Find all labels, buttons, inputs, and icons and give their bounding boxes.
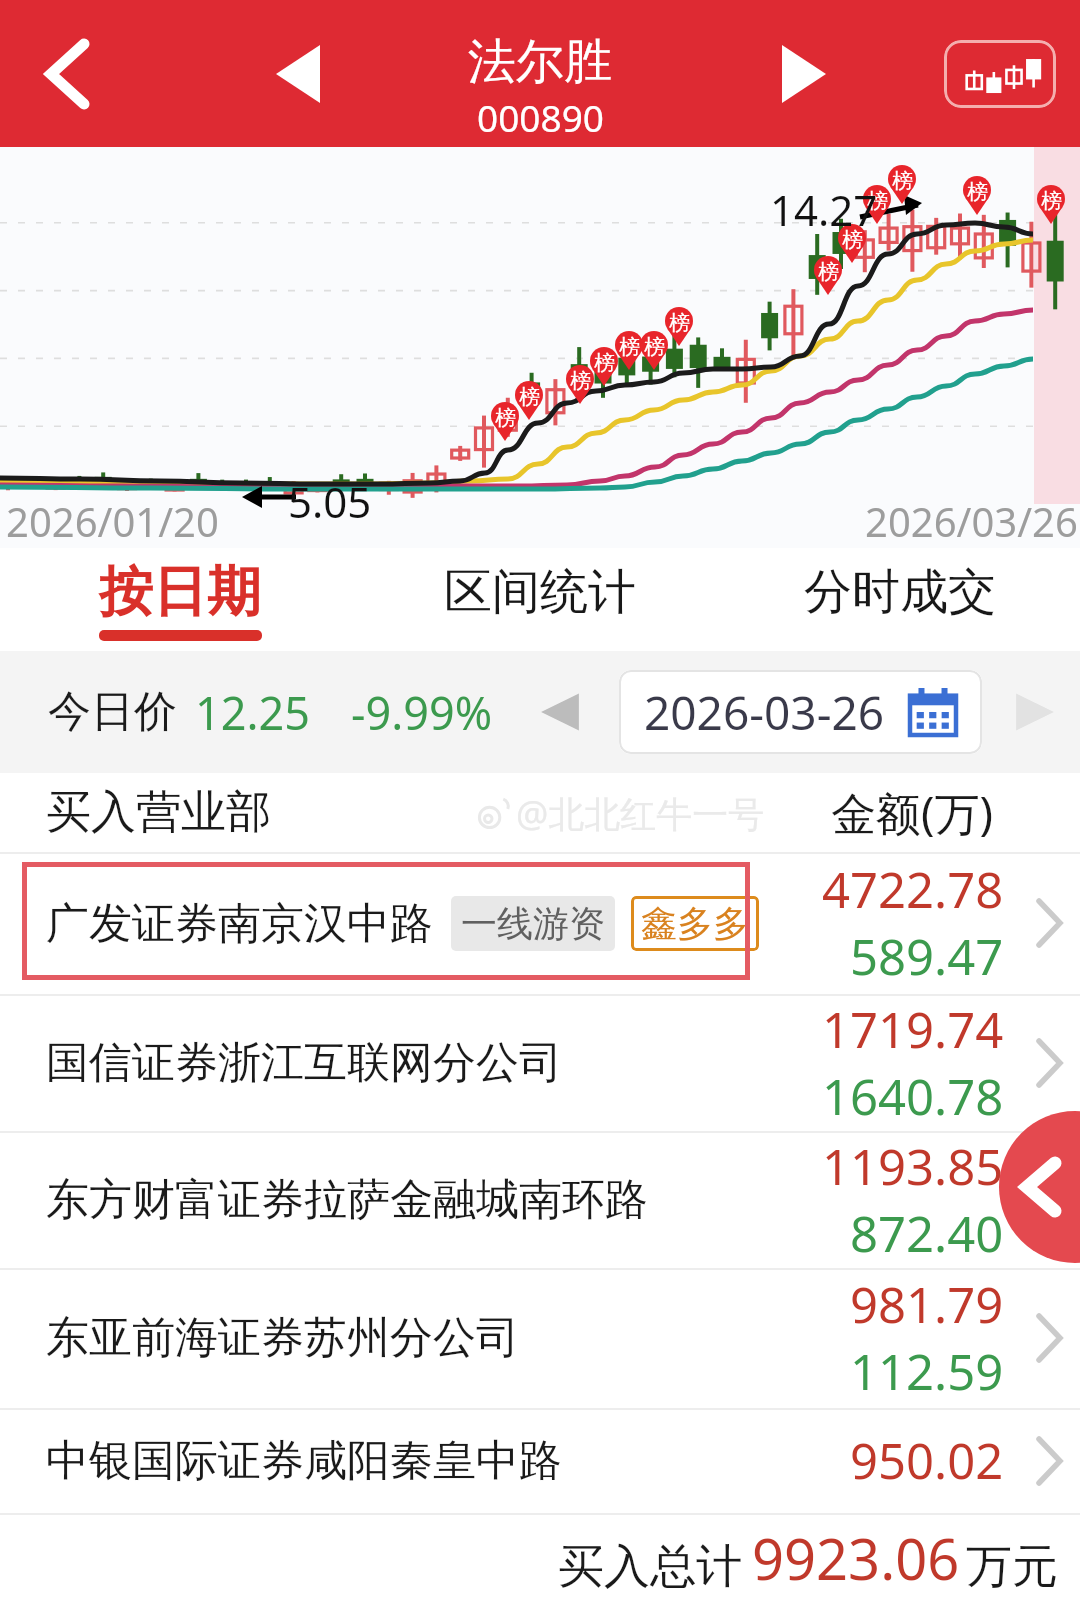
button[interactable]: Next stock xyxy=(752,24,852,124)
staticText: 950.02 xyxy=(850,1427,1004,1494)
staticText: 榜 xyxy=(644,334,665,360)
button[interactable]: 东方财富证券拉萨金融城南环路 xyxy=(0,1131,1080,1268)
staticText: 法尔胜 xyxy=(468,32,612,92)
staticText: 榜 xyxy=(519,384,540,410)
button[interactable]: 广发证券南京汉中路 xyxy=(0,852,1080,994)
staticText: 广发证券南京汉中路 xyxy=(46,897,433,951)
button[interactable]: 分时成交 xyxy=(720,548,1080,651)
staticText: 买入营业部 xyxy=(46,784,271,841)
staticText: 区间统计 xyxy=(444,562,636,622)
staticText: 981.79 xyxy=(850,1271,1004,1338)
staticText: 国信证券浙江互联网分公司 xyxy=(46,1036,562,1090)
staticText: 买入总计 xyxy=(558,1538,742,1596)
staticText: 1640.78 xyxy=(822,1063,1004,1130)
staticText: 中银国际证券咸阳秦皇中路 xyxy=(46,1434,562,1488)
button[interactable]: 2026-03-26 xyxy=(619,670,982,754)
button[interactable]: K-line chart xyxy=(944,40,1056,108)
staticText: 东方财富证券拉萨金融城南环路 xyxy=(46,1173,648,1227)
staticText: 榜 xyxy=(892,168,913,194)
staticText: 榜 xyxy=(818,259,839,285)
staticText: 按日期 xyxy=(99,558,261,626)
staticText: 一线游资 xyxy=(461,901,605,946)
staticText: 榜 xyxy=(594,350,615,376)
staticText: 112.59 xyxy=(850,1338,1004,1405)
staticText: 榜 xyxy=(867,188,888,214)
button[interactable]: 中银国际证券咸阳秦皇中路 xyxy=(0,1408,1080,1513)
staticText: 1193.85 xyxy=(822,1133,1004,1200)
staticText: 鑫多多 xyxy=(641,901,749,946)
staticText: @北北红牛一号 xyxy=(516,789,765,838)
staticText: 榜 xyxy=(619,334,640,360)
button[interactable]: Previous day xyxy=(529,681,591,743)
staticText: 2026/03/26 xyxy=(865,494,1078,548)
staticText: 榜 xyxy=(669,310,690,336)
staticText: 榜 xyxy=(1041,188,1062,214)
staticText: 2026/01/20 xyxy=(6,494,219,548)
button[interactable]: 区间统计 xyxy=(360,548,720,651)
staticText: 4722.78 xyxy=(822,856,1004,923)
staticText: 589.47 xyxy=(850,923,1004,990)
staticText: 9923.06 xyxy=(752,1520,960,1596)
staticText: 14.27 xyxy=(770,181,878,238)
staticText: 今日价 xyxy=(48,685,177,739)
staticText: 5.05 xyxy=(288,473,372,530)
staticText: 000890 xyxy=(477,92,604,142)
staticText: 榜 xyxy=(495,405,516,431)
staticText: -9.99% xyxy=(351,682,493,743)
staticText: 分时成交 xyxy=(804,562,996,622)
staticText: 12.25 xyxy=(195,682,311,743)
button[interactable]: Back xyxy=(12,19,122,129)
staticText: 872.40 xyxy=(850,1200,1004,1267)
button[interactable]: 东亚前海证券苏州分公司 xyxy=(0,1268,1080,1408)
staticText: 1719.74 xyxy=(822,996,1004,1063)
button[interactable]: Previous stock xyxy=(250,24,350,124)
button[interactable]: 国信证券浙江互联网分公司 xyxy=(0,994,1080,1131)
staticText: 2026-03-26 xyxy=(644,681,885,744)
staticText: 榜 xyxy=(842,227,863,253)
button[interactable]: 按日期 xyxy=(0,548,360,651)
staticText: 金额(万) xyxy=(831,782,994,843)
staticText: 榜 xyxy=(967,179,988,205)
staticText: 东亚前海证券苏州分公司 xyxy=(46,1311,519,1365)
staticText: 榜 xyxy=(570,368,591,394)
button[interactable]: Next day xyxy=(1004,681,1066,743)
button[interactable]: Previous page xyxy=(999,1111,1080,1263)
staticText: 万元 xyxy=(966,1538,1058,1596)
